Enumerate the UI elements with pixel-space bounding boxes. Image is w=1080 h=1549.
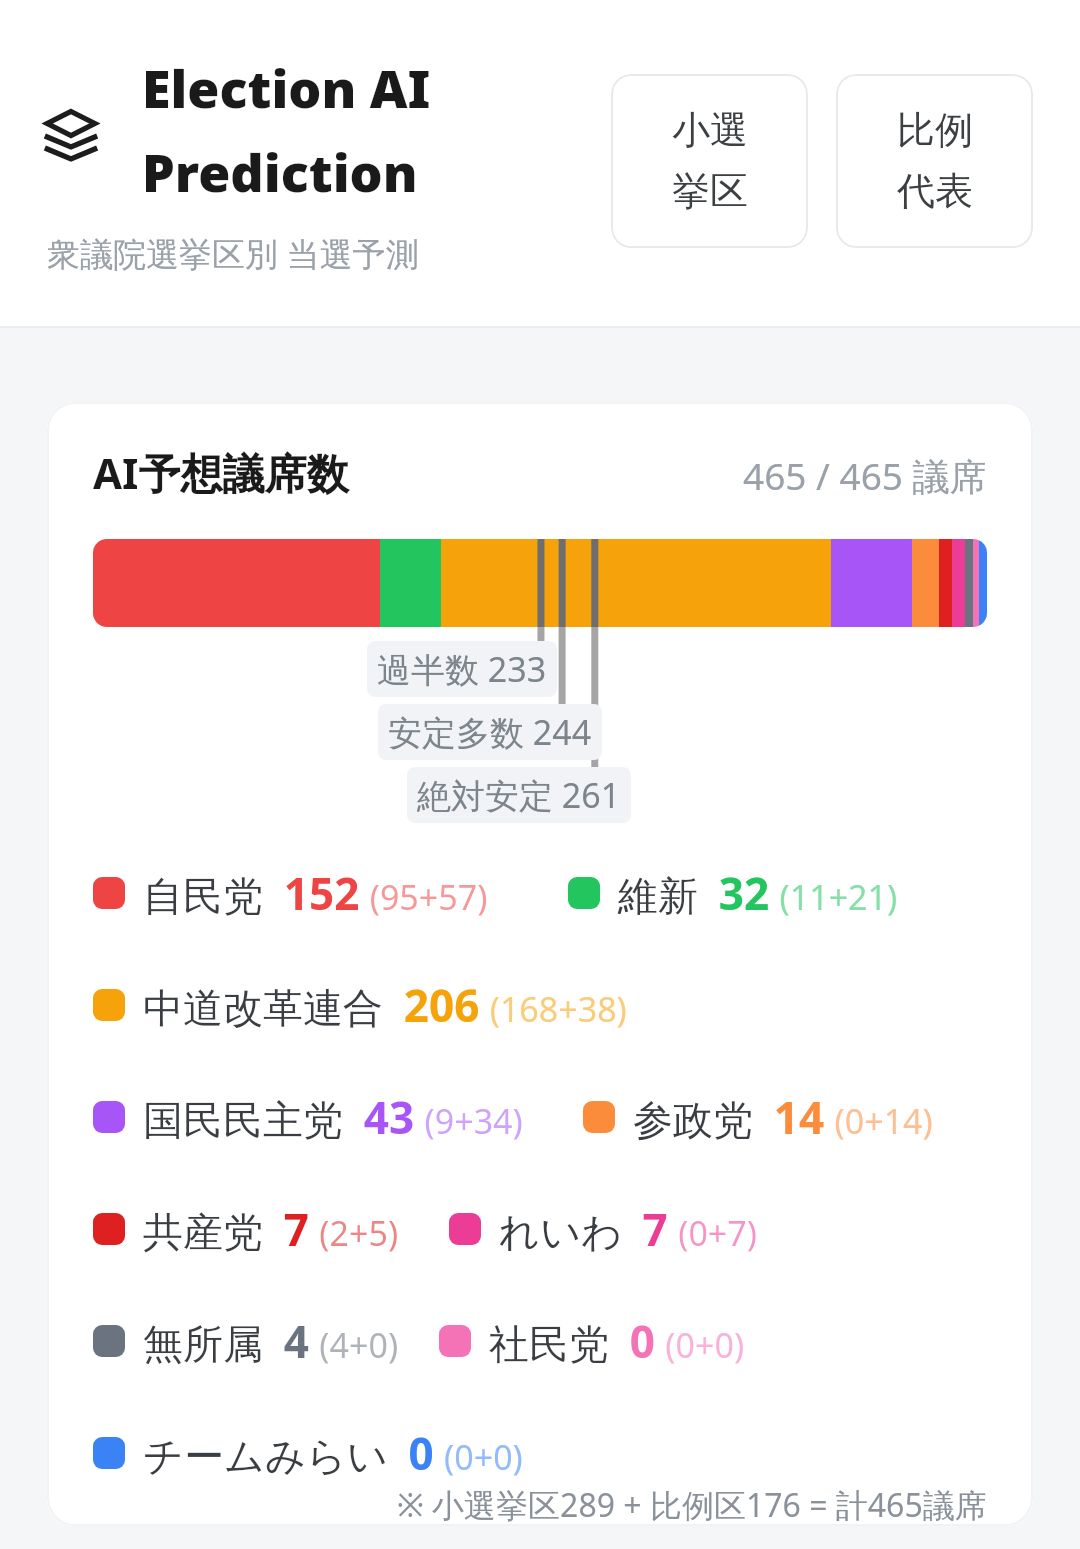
button[interactable]: 無所属 4 (4+0) [93,1311,399,1371]
staticText: 自民党 152 (95+57) [143,863,488,923]
button[interactable]: 参政党 14 (0+14) [583,1087,933,1147]
staticText: 絶対安定 261 [417,772,621,818]
other: Layers [44,110,98,160]
button[interactable]: 比例 代表 [836,74,1033,248]
button[interactable]: 中道改革連合 206 (168+38) [93,975,627,1035]
button[interactable]: 国民民主党 43 (9+34) [93,1087,523,1147]
staticText: 過半数 233 [377,646,547,692]
staticText: 共産党 7 (2+5) [143,1199,399,1259]
staticText: チームみらい 0 (0+0) [143,1423,523,1483]
button[interactable]: 共産党 7 (2+5) [93,1199,399,1259]
staticText: 衆議院選挙区別 当選予測 [47,231,419,276]
button[interactable]: 社民党 0 (0+0) [439,1311,745,1371]
staticText: ※ 小選挙区289 + 比例区176 = 計465議席 [397,1483,987,1526]
staticText: 社民党 0 (0+0) [489,1311,745,1371]
button[interactable]: 維新 32 (11+21) [568,863,898,923]
staticText: 参政党 14 (0+14) [633,1087,933,1147]
staticText: 無所属 4 (4+0) [143,1311,399,1371]
button[interactable]: れいわ 7 (0+7) [449,1199,757,1259]
button[interactable]: 自民党 152 (95+57) [93,863,488,923]
staticText: れいわ 7 (0+7) [499,1199,757,1259]
staticText: 維新 32 (11+21) [618,863,898,923]
staticText: 小選 挙区 [672,106,748,216]
staticText: 国民民主党 43 (9+34) [143,1087,523,1147]
button[interactable]: チームみらい 0 (0+0) [93,1423,523,1483]
button[interactable]: 小選 挙区 [611,74,808,248]
staticText: 安定多数 244 [388,709,592,755]
staticText: 465 / 465 議席 [743,450,987,501]
staticText: Election AI Prediction [142,52,431,207]
staticText: AI予想議席数 [93,444,349,501]
staticText: 比例 代表 [897,106,973,216]
staticText: 中道改革連合 206 (168+38) [143,975,627,1035]
